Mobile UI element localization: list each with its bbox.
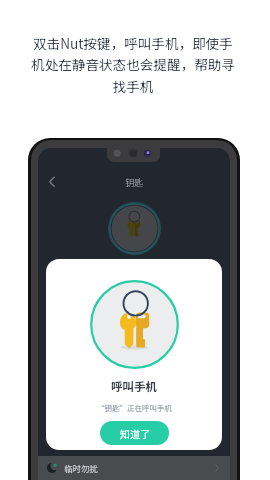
staticText: 双击Nut按键，呼叫手机，即使手机处在静音状态也会提醒，帮助寻找手机 <box>27 33 239 96</box>
button[interactable]: Back <box>41 172 63 194</box>
staticText: 临时勿扰 <box>64 462 99 474</box>
button[interactable]: 临时勿扰 <box>38 456 230 480</box>
staticText: “钥匙”正在呼叫手机 <box>97 402 172 413</box>
staticText: 钥匙 <box>125 176 144 189</box>
staticText: 呼叫手机 <box>111 378 157 395</box>
button[interactable]: 知道了 <box>100 421 169 445</box>
staticText: 知道了 <box>120 426 150 440</box>
